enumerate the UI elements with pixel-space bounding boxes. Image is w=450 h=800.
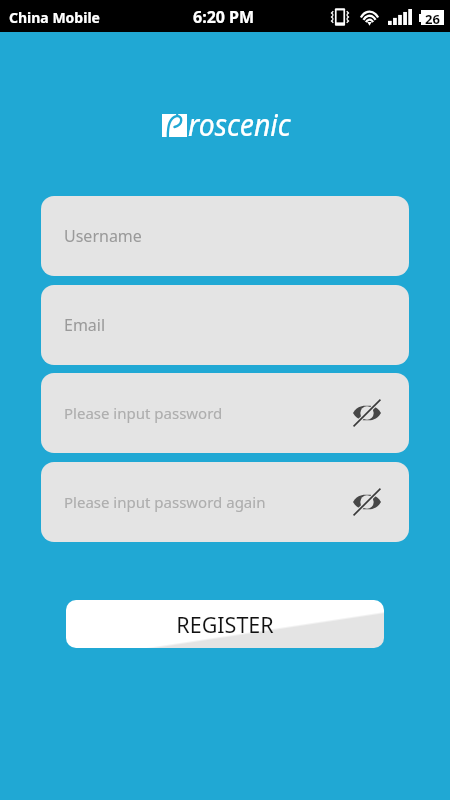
button[interactable]: Show password [346,481,388,523]
staticText: roscenic [188,104,291,145]
button[interactable]: Show password [346,392,388,434]
button[interactable]: Email [41,285,409,365]
staticText: China Mobile [9,8,100,27]
staticText: 26 [425,10,440,25]
button[interactable]: Please input password again [41,462,409,542]
staticText: REGISTER [176,610,274,639]
staticText: 6:20 PM [193,6,255,28]
staticText: Please input password [64,403,223,423]
button[interactable]: REGISTER [66,600,384,648]
staticText: Username [64,225,142,247]
staticText: Please input password again [64,492,266,512]
button[interactable]: Username [41,196,409,276]
staticText: Email [64,314,106,336]
button[interactable]: Please input password [41,373,409,453]
